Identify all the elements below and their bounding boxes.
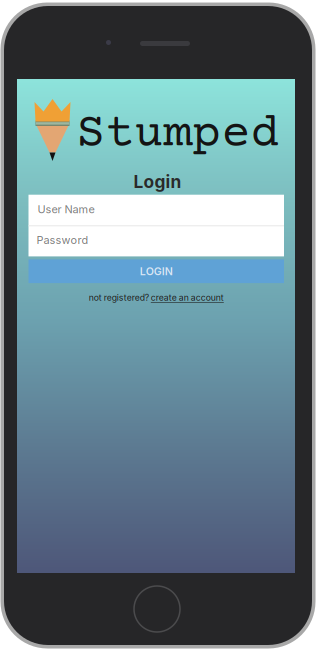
staticText: Password <box>36 233 88 246</box>
staticText: Stumped <box>76 108 279 161</box>
staticText: User Name <box>37 203 94 216</box>
staticText: not registered? <box>89 292 151 303</box>
button[interactable]: not registered? <box>81 291 231 305</box>
staticText: LOGIN <box>140 265 173 278</box>
staticText: Login <box>133 171 181 192</box>
button[interactable]: LOGIN <box>28 259 284 283</box>
staticText: create an account <box>151 292 224 303</box>
